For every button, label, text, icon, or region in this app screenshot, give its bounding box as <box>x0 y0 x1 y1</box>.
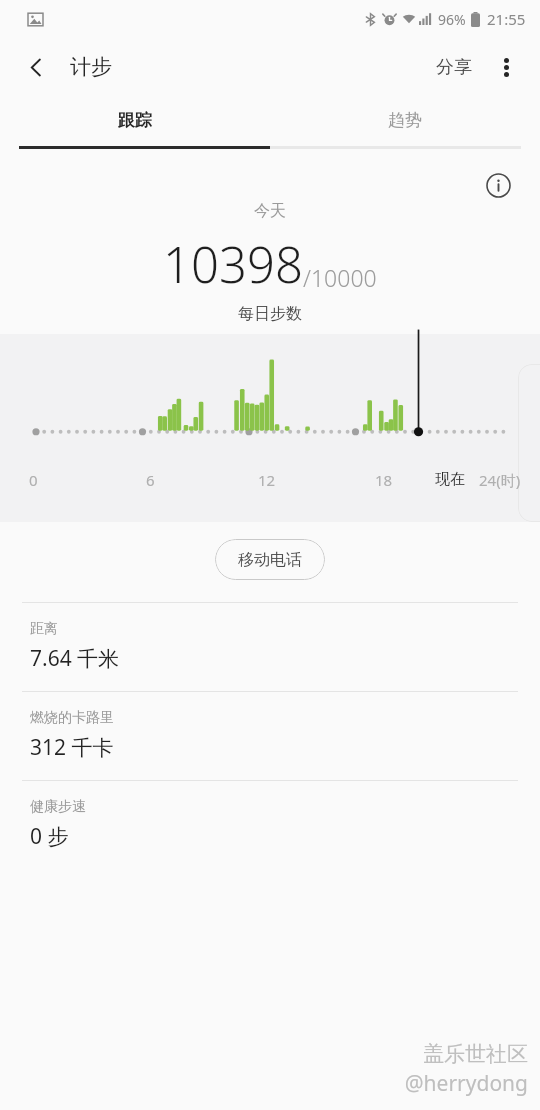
staticText: 18 <box>375 470 393 490</box>
staticText: 0 <box>29 470 38 490</box>
button[interactable]: 移动电话 <box>215 539 325 580</box>
staticText: 现在 <box>435 470 465 489</box>
button[interactable]: Information <box>478 165 518 205</box>
staticText: 趋势 <box>388 110 422 131</box>
button[interactable]: 分享 <box>426 43 482 91</box>
staticText: 312 千卡 <box>30 733 114 762</box>
staticText: 盖乐世社区 <box>423 1041 528 1067</box>
staticText: 96% <box>438 10 466 29</box>
button[interactable]: 跟踪 <box>0 95 270 146</box>
staticText: 24(时) <box>479 470 521 490</box>
button[interactable]: 趋势 <box>270 95 540 146</box>
button[interactable]: 距离 <box>0 603 540 691</box>
staticText: 12 <box>258 470 276 490</box>
staticText: 移动电话 <box>238 550 302 570</box>
staticText: /10000 <box>303 262 377 293</box>
staticText: 7.64 千米 <box>30 644 120 673</box>
staticText: 计步 <box>70 54 112 80</box>
staticText: 0 步 <box>30 822 69 851</box>
staticText: 健康步速 <box>30 798 86 816</box>
button[interactable]: 健康步速 <box>0 781 540 869</box>
staticText: 今天 <box>254 201 286 221</box>
staticText: 跟踪 <box>118 110 152 131</box>
staticText: 10398 <box>163 231 303 298</box>
button[interactable]: More options <box>482 43 530 91</box>
staticText: @herrydong <box>404 1069 528 1098</box>
staticText: 每日步数 <box>238 304 302 324</box>
button[interactable]: Back <box>12 43 60 91</box>
staticText: 距离 <box>30 620 58 638</box>
button[interactable]: 燃烧的卡路里 <box>0 692 540 780</box>
staticText: 分享 <box>436 56 472 79</box>
staticText: 燃烧的卡路里 <box>30 709 114 727</box>
staticText: 21:55 <box>487 9 526 29</box>
staticText: 6 <box>146 470 155 490</box>
